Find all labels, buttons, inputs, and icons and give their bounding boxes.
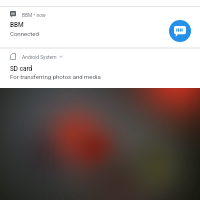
staticText: SD card: [10, 65, 33, 73]
button[interactable]: BBM • now: [0, 7, 200, 47]
staticText: For transferring photos and media: [10, 73, 101, 80]
staticText: Android System: [22, 54, 57, 60]
button[interactable]: BBM message: [169, 20, 191, 42]
button[interactable]: Android System: [0, 49, 200, 88]
staticText: BBM • now: [22, 12, 46, 18]
staticText: Connected: [10, 30, 39, 37]
staticText: BBM: [10, 21, 24, 29]
